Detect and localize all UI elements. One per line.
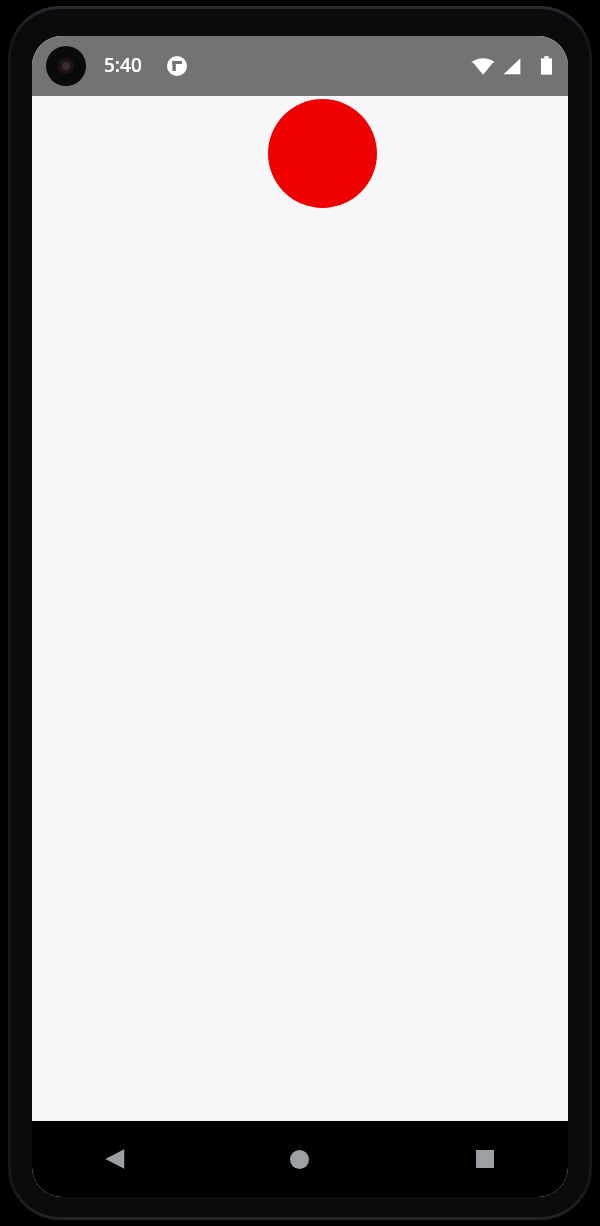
button[interactable]: Home [272, 1132, 326, 1186]
button[interactable]: Recent apps [458, 1132, 512, 1186]
button[interactable]: Red circle [268, 99, 377, 208]
staticText: 5:40 [104, 52, 142, 78]
button[interactable]: Back [88, 1132, 142, 1186]
